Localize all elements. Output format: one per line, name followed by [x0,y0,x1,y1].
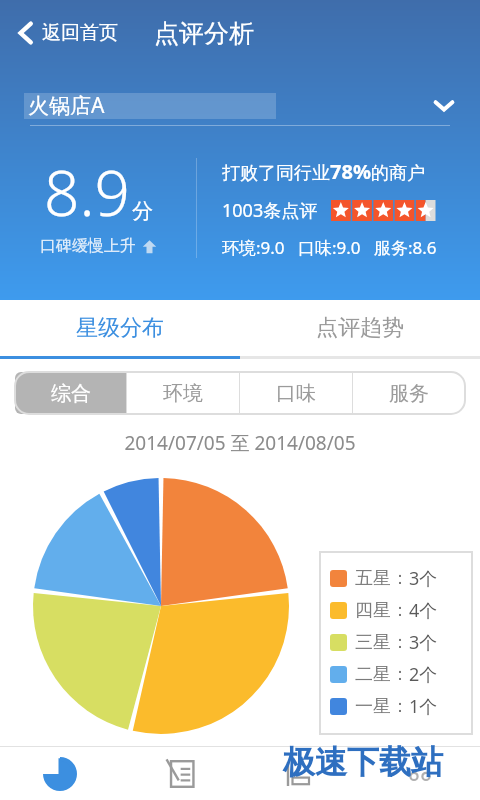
staticText: 打败了同行业 [222,162,330,185]
staticText: 口味:9.0 [298,236,361,259]
staticText: 返回首页 [42,21,118,45]
staticText: 火锅店A [28,91,105,120]
button[interactable]: 火锅店A [0,84,480,126]
staticText: 三星： [355,631,409,654]
staticText: 1个 [409,694,438,719]
staticText: 8.9 [44,150,130,234]
staticText: 二星： [355,663,409,686]
button[interactable]: 环境 [127,372,239,414]
staticText: 星级分布 [76,314,164,342]
staticText: 点评分析 [154,18,254,49]
staticText: 五星： [355,567,409,590]
staticText: 2014/07/05 至 2014/08/05 [124,430,356,456]
button[interactable]: 列表 [240,747,360,800]
staticText: 4个 [409,598,438,623]
staticText: 78% [330,158,371,185]
staticText: 3个 [409,630,438,655]
staticText: 环境:9.0 [222,236,285,259]
staticText: 的商户 [371,162,425,185]
button[interactable]: 返回首页 [0,0,128,66]
button[interactable]: 分析 [0,747,120,800]
button[interactable]: 点评趋势 [240,300,480,356]
button[interactable]: 更多 [360,747,480,800]
staticText: 2个 [409,662,438,687]
button[interactable]: 服务 [353,372,465,414]
staticText: 四星： [355,599,409,622]
staticText: 口碑缓慢上升 [40,236,136,256]
staticText: 3个 [409,566,438,591]
button[interactable]: 综合 [15,372,126,414]
staticText: 服务 [389,381,429,406]
button[interactable]: 口味 [240,372,352,414]
staticText: 综合 [51,381,91,406]
button[interactable]: 星级分布 [0,300,240,356]
staticText: 环境 [163,381,203,406]
staticText: 1003条点评 [222,198,318,223]
staticText: 一星： [355,695,409,718]
staticText: 极速下载站 [283,742,443,782]
staticText: 点评趋势 [316,314,404,342]
staticText: 分 [132,198,153,224]
button[interactable]: 点评 [120,747,240,800]
staticText: 口味 [276,381,316,406]
staticText: 服务:8.6 [374,236,437,259]
